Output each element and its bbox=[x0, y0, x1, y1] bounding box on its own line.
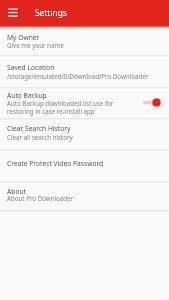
button[interactable]: Clear Search History bbox=[0, 120, 169, 151]
staticText: Auto Backup bbox=[7, 91, 47, 100]
button[interactable]: Auto Backup toggle bbox=[142, 96, 161, 109]
staticText: Clear Search History bbox=[7, 124, 71, 133]
staticText: /storage/emulated/0/Download/Pro Downloa… bbox=[7, 72, 149, 80]
staticText: Clear all search history bbox=[7, 133, 73, 141]
staticText: Saved Location bbox=[7, 63, 55, 72]
staticText: About Pro Downloader bbox=[7, 194, 74, 202]
button[interactable]: Create Protect Video Password bbox=[0, 151, 169, 183]
staticText: Create Protect Video Password bbox=[7, 159, 104, 168]
staticText: Settings bbox=[35, 7, 67, 18]
staticText: About bbox=[7, 187, 26, 196]
button[interactable]: My Owner bbox=[0, 25, 169, 57]
button[interactable]: Menu bbox=[5, 5, 20, 20]
staticText: Give me your name bbox=[7, 41, 64, 49]
staticText: Auto Backup downloaded list use for rest… bbox=[7, 99, 114, 115]
staticText: My Owner bbox=[7, 33, 40, 42]
button[interactable]: About bbox=[0, 183, 169, 212]
button[interactable]: Auto Backup bbox=[0, 89, 169, 120]
button[interactable]: Saved Location bbox=[0, 57, 169, 89]
